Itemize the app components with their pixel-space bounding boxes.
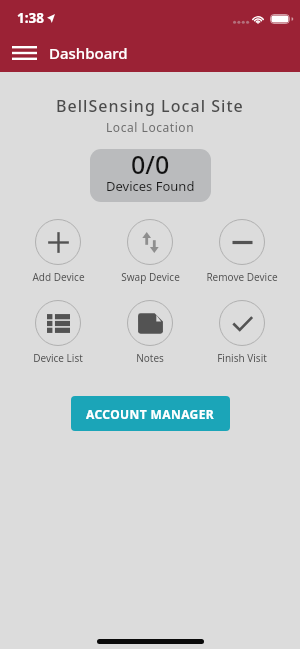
staticText: Add Device <box>32 270 85 284</box>
staticText: Devices Found <box>106 177 195 195</box>
staticText: ACCOUNT MANAGER <box>86 406 215 422</box>
staticText: Notes <box>136 351 164 365</box>
staticText: Device List <box>33 351 83 365</box>
button[interactable]: Notes <box>106 300 194 365</box>
staticText: BellSensing Local Site <box>56 95 244 117</box>
staticText: 1:38 <box>17 9 44 27</box>
button[interactable]: Add Device <box>14 219 102 284</box>
button[interactable]: Remove Device <box>198 219 286 284</box>
button[interactable]: 0/0 <box>90 149 211 202</box>
button[interactable]: ACCOUNT MANAGER <box>71 396 230 431</box>
staticText: 0/0 <box>131 149 170 181</box>
staticText: Swap Device <box>121 270 180 284</box>
button[interactable]: Finish Visit <box>198 300 286 365</box>
staticText: Remove Device <box>206 270 278 284</box>
staticText: Local Location <box>106 119 195 135</box>
staticText: Dashboard <box>49 43 128 63</box>
staticText: Finish Visit <box>217 351 267 365</box>
button[interactable]: Device List <box>14 300 102 365</box>
button[interactable]: Swap Device <box>106 219 194 284</box>
button[interactable]: Open navigation menu <box>6 35 43 71</box>
